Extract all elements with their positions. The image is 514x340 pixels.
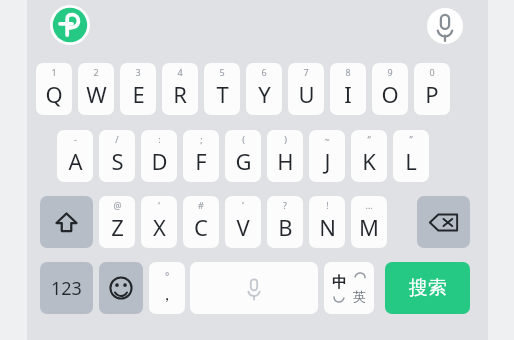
button[interactable]: ‘ xyxy=(141,196,177,248)
button[interactable]: 1 xyxy=(36,63,72,115)
staticText: N xyxy=(319,212,336,242)
staticText: Z xyxy=(111,212,124,242)
staticText: ; xyxy=(200,133,203,145)
button[interactable]: ” xyxy=(393,130,429,182)
staticText: ’ xyxy=(242,199,244,211)
staticText: I xyxy=(344,79,352,109)
button[interactable]: Voice input xyxy=(427,8,463,44)
staticText: ° xyxy=(165,269,170,283)
staticText: / xyxy=(115,133,119,145)
staticText: J xyxy=(324,146,331,176)
staticText: ( xyxy=(242,133,245,145)
staticText: # xyxy=(198,199,204,211)
staticText: Q xyxy=(45,79,63,109)
staticText: C xyxy=(194,212,208,242)
button[interactable]: @ xyxy=(99,196,135,248)
staticText: 5 xyxy=(219,66,225,78)
button[interactable]: - xyxy=(57,130,93,182)
button[interactable]: # xyxy=(183,196,219,248)
staticText: H xyxy=(277,146,294,176)
staticText: P xyxy=(425,79,439,109)
button[interactable]: 7 xyxy=(288,63,324,115)
button[interactable]: Input method settings xyxy=(50,5,90,45)
button[interactable]: 4 xyxy=(162,63,198,115)
staticText: B xyxy=(278,212,293,242)
button[interactable]: 8 xyxy=(330,63,366,115)
staticText: ” xyxy=(409,133,413,145)
staticText: Y xyxy=(258,79,271,109)
staticText: L xyxy=(405,146,417,176)
staticText: K xyxy=(362,146,376,176)
staticText: F xyxy=(195,146,207,176)
button[interactable]: ) xyxy=(267,130,303,182)
button[interactable]: 2 xyxy=(78,63,114,115)
staticText: - xyxy=(74,133,77,145)
staticText: E xyxy=(132,79,145,109)
staticText: D xyxy=(151,146,168,176)
staticText: … xyxy=(365,199,373,211)
staticText: “ xyxy=(367,133,371,145)
staticText: 8 xyxy=(345,66,351,78)
button[interactable]: Space xyxy=(190,262,318,314)
button[interactable]: 5 xyxy=(204,63,240,115)
staticText: O xyxy=(381,79,399,109)
staticText: ? xyxy=(283,199,287,211)
button[interactable]: Emoji xyxy=(99,262,143,314)
button[interactable]: 搜索 xyxy=(385,262,470,314)
staticText: W xyxy=(86,79,107,109)
staticText: T xyxy=(216,79,229,109)
button[interactable]: … xyxy=(351,196,387,248)
button[interactable]: “ xyxy=(351,130,387,182)
staticText: 3 xyxy=(135,66,141,78)
staticText: 7 xyxy=(303,66,309,78)
button[interactable]: ’ xyxy=(225,196,261,248)
button[interactable]: ( xyxy=(225,130,261,182)
staticText: @ xyxy=(113,199,122,211)
staticText: ， xyxy=(159,285,175,305)
staticText: 123 xyxy=(51,276,82,301)
staticText: : xyxy=(158,133,161,145)
button[interactable]: ! xyxy=(309,196,345,248)
staticText: ! xyxy=(326,199,329,211)
staticText: G xyxy=(235,146,252,176)
button[interactable]: 9 xyxy=(372,63,408,115)
staticText: X xyxy=(153,212,166,242)
button[interactable]: ° xyxy=(149,262,185,314)
staticText: ‘ xyxy=(158,199,160,211)
staticText: S xyxy=(111,146,124,176)
staticText: ~ xyxy=(324,133,330,145)
button[interactable]: ~ xyxy=(309,130,345,182)
staticText: V xyxy=(236,212,250,242)
button[interactable]: ? xyxy=(267,196,303,248)
staticText: 4 xyxy=(177,66,183,78)
staticText: 英 xyxy=(353,288,366,304)
button[interactable]: : xyxy=(141,130,177,182)
staticText: 中 xyxy=(332,273,347,292)
button[interactable]: Shift xyxy=(40,196,93,248)
staticText: U xyxy=(298,79,315,109)
staticText: ) xyxy=(284,133,287,145)
staticText: R xyxy=(173,79,187,109)
staticText: M xyxy=(359,212,379,242)
button[interactable]: Switch Chinese English xyxy=(324,262,374,314)
button[interactable]: 123 xyxy=(40,262,93,314)
button[interactable]: Backspace xyxy=(417,196,470,248)
staticText: 2 xyxy=(93,66,99,78)
button[interactable]: ; xyxy=(183,130,219,182)
button[interactable]: / xyxy=(99,130,135,182)
staticText: 搜索 xyxy=(409,276,447,300)
staticText: 1 xyxy=(51,66,57,78)
staticText: A xyxy=(68,146,83,176)
staticText: 9 xyxy=(387,66,393,78)
button[interactable]: 0 xyxy=(414,63,450,115)
button[interactable]: 6 xyxy=(246,63,282,115)
button[interactable]: 3 xyxy=(120,63,156,115)
staticText: 0 xyxy=(429,66,435,78)
staticText: 6 xyxy=(261,66,267,78)
